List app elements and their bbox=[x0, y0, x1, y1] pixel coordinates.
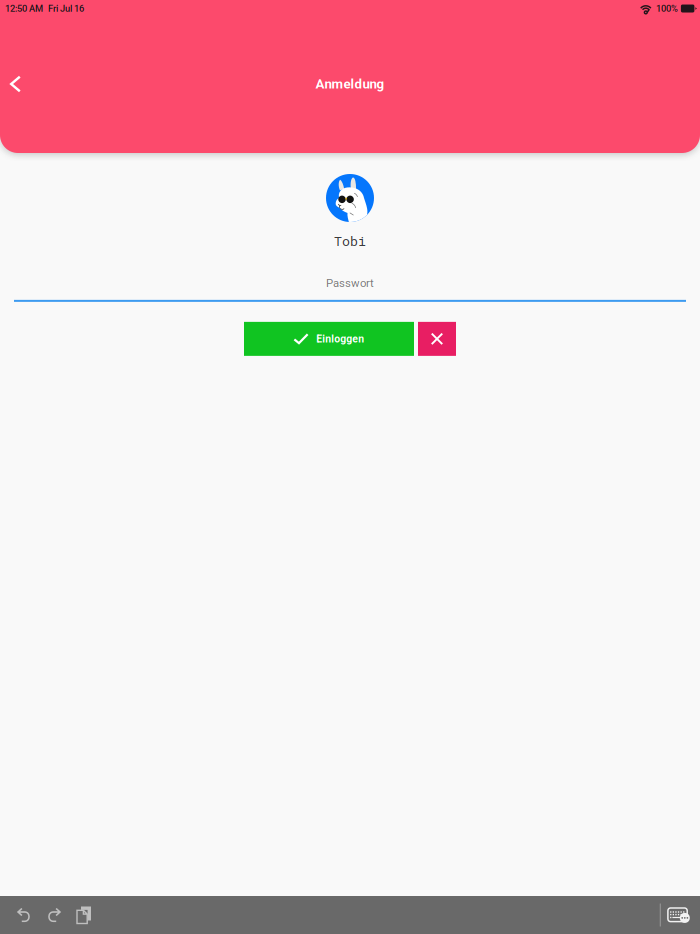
button[interactable]: Einfügen bbox=[69, 896, 99, 934]
staticText: 12:50 AM bbox=[5, 3, 43, 14]
button[interactable]: Zurück bbox=[0, 62, 31, 106]
button[interactable]: Einloggen bbox=[244, 322, 414, 356]
staticText: Tobi bbox=[334, 232, 366, 250]
button[interactable]: Wiederholen bbox=[39, 896, 69, 934]
button[interactable]: Rückgängig bbox=[9, 896, 39, 934]
staticText: Anmeldung bbox=[315, 76, 384, 92]
staticText: 100% bbox=[656, 3, 678, 14]
button[interactable]: Abbrechen bbox=[418, 322, 456, 356]
staticText: Passwort bbox=[326, 277, 374, 290]
staticText: Fri Jul 16 bbox=[48, 3, 84, 14]
button[interactable]: Tastatur bbox=[661, 896, 695, 934]
staticText: Einloggen bbox=[316, 333, 364, 345]
